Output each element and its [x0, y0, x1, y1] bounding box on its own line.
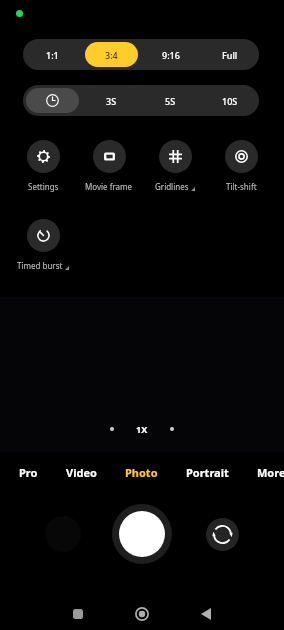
- other: Timer off: [46, 94, 59, 107]
- staticText: 3:4: [105, 49, 118, 61]
- staticText: 1:1: [46, 49, 59, 61]
- staticText: 9:16: [162, 49, 180, 61]
- button[interactable]: Video: [52, 458, 111, 486]
- button[interactable]: Gridlines: [142, 140, 208, 192]
- button[interactable]: 9:16: [141, 39, 200, 70]
- staticText: Full: [222, 49, 238, 61]
- button[interactable]: 10S: [200, 85, 259, 116]
- button[interactable]: Timer off: [23, 85, 82, 116]
- staticText: More: [257, 465, 284, 480]
- button[interactable]: 1X: [125, 421, 159, 437]
- button[interactable]: Tilt-shift: [208, 140, 274, 192]
- button[interactable]: Movie frame: [76, 140, 142, 192]
- button[interactable]: Portrait: [172, 458, 243, 486]
- button[interactable]: Timed burst: [10, 219, 76, 271]
- staticText: Movie frame: [85, 181, 133, 192]
- button[interactable]: Back: [192, 600, 220, 628]
- staticText: 5S: [165, 95, 176, 107]
- button[interactable]: Recents: [64, 600, 92, 628]
- staticText: 1X: [136, 423, 148, 435]
- button[interactable]: Shutter: [112, 504, 172, 564]
- staticText: Gridlines: [155, 181, 189, 192]
- staticText: Pro: [19, 465, 38, 480]
- button[interactable]: Pro: [5, 458, 52, 486]
- button[interactable]: Full: [200, 39, 259, 70]
- button[interactable]: 1:1: [23, 39, 82, 70]
- staticText: Photo: [125, 465, 158, 480]
- staticText: Settings: [28, 181, 59, 192]
- button[interactable]: Home: [128, 600, 156, 628]
- button[interactable]: 3:4: [82, 39, 141, 70]
- button[interactable]: Zoom out: [99, 421, 125, 437]
- staticText: Video: [66, 465, 97, 480]
- button[interactable]: 3S: [82, 85, 141, 116]
- button[interactable]: Photo: [111, 458, 172, 486]
- staticText: Tilt-shift: [226, 181, 257, 192]
- button[interactable]: Zoom in: [159, 421, 185, 437]
- staticText: Timed burst: [17, 260, 63, 271]
- button[interactable]: Settings: [10, 140, 76, 192]
- staticText: 10S: [222, 95, 238, 107]
- button[interactable]: 5S: [141, 85, 200, 116]
- staticText: 3S: [106, 95, 117, 107]
- button[interactable]: Switch camera: [206, 518, 239, 551]
- button[interactable]: More: [243, 458, 284, 486]
- staticText: Portrait: [186, 465, 229, 480]
